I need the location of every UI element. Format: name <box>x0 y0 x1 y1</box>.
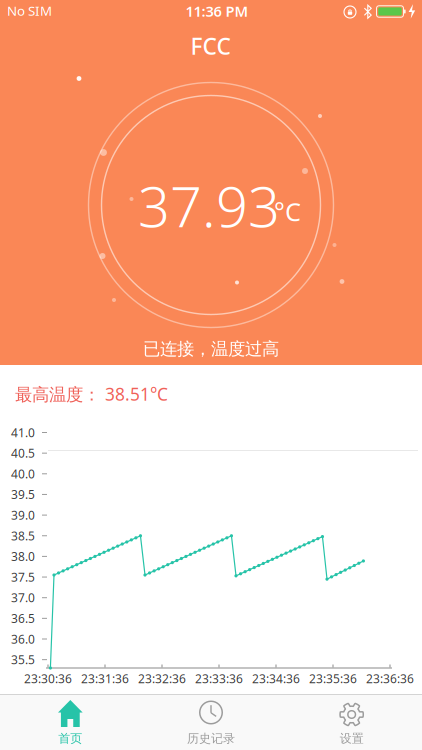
staticText: °C <box>274 195 301 228</box>
staticText: 41.0 <box>11 424 35 440</box>
staticText: 38.0 <box>11 548 35 564</box>
staticText: 36.0 <box>11 631 35 647</box>
staticText: FCC <box>190 31 230 61</box>
staticText: 40.0 <box>11 466 35 482</box>
button[interactable]: 首页 <box>0 695 141 750</box>
staticText: 11:36 PM <box>185 1 248 21</box>
staticText: 最高温度： 38.51°C <box>15 382 168 405</box>
staticText: 设置 <box>340 731 364 746</box>
staticText: 23:32:36 <box>138 670 186 686</box>
staticText: 40.5 <box>11 445 35 461</box>
staticText: 38.5 <box>11 528 35 544</box>
staticText: 37.93 <box>138 168 280 243</box>
staticText: 37.5 <box>11 569 35 585</box>
staticText: 23:33:36 <box>195 670 243 686</box>
staticText: 23:35:36 <box>309 670 357 686</box>
button[interactable]: 设置 <box>281 695 422 750</box>
staticText: 23:34:36 <box>252 670 300 686</box>
staticText: 23:36:36 <box>366 670 414 686</box>
staticText: 23:31:36 <box>81 670 129 686</box>
staticText: No SIM <box>7 2 52 19</box>
staticText: 首页 <box>58 731 82 746</box>
staticText: 39.0 <box>11 507 35 523</box>
staticText: 37.0 <box>11 590 35 606</box>
staticText: 23:30:36 <box>24 670 72 686</box>
staticText: 39.5 <box>11 486 35 502</box>
staticText: 已连接，温度过高 <box>143 338 279 360</box>
staticText: 历史记录 <box>187 731 235 746</box>
staticText: 36.5 <box>11 610 35 626</box>
button[interactable]: 历史记录 <box>141 695 281 750</box>
staticText: 35.5 <box>11 652 35 668</box>
